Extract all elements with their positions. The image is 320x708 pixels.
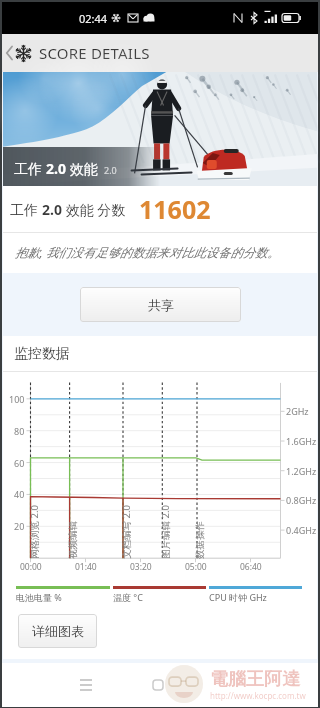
staticText: 電腦王阿達 — [210, 668, 300, 691]
staticText: 工作 — [14, 159, 46, 178]
staticText: 2GHz — [286, 405, 309, 417]
staticText: 工作 — [10, 200, 42, 219]
staticText: 1.2GHz — [286, 465, 317, 477]
staticText: 0.8GHz — [286, 494, 317, 506]
staticText: 05:00 — [185, 561, 207, 573]
staticText: 数据操作 — [194, 521, 206, 559]
staticText: 监控数据 — [14, 345, 70, 363]
staticText: 03:20 — [130, 561, 152, 573]
staticText: 60 — [14, 457, 25, 469]
staticText: 11602 — [139, 192, 211, 226]
staticText: 2.0 — [46, 159, 66, 178]
staticText: 2.0 — [42, 200, 62, 219]
staticText: 详细图表 — [32, 623, 84, 639]
staticText: 02:44 — [79, 11, 108, 26]
button[interactable]: Home — [136, 663, 180, 707]
staticText: http://www.kocpc.com.tw — [210, 690, 306, 701]
staticText: 01:40 — [75, 561, 97, 573]
staticText: 共享 — [148, 297, 174, 313]
staticText: 00:00 — [20, 561, 42, 573]
staticText: 效能 — [66, 159, 98, 178]
staticText: 图片编辑 2.0 — [159, 505, 171, 559]
button[interactable]: 详细图表 — [18, 614, 97, 648]
staticText: 网格浏览 2.0 — [28, 505, 40, 559]
button[interactable]: Back — [2, 34, 14, 72]
staticText: 1.6GHz — [286, 435, 317, 447]
staticText: 电池电量 % — [16, 591, 62, 603]
staticText: 80 — [14, 425, 25, 437]
staticText: 0.4GHz — [286, 524, 317, 536]
staticText: 06:40 — [240, 561, 262, 573]
staticText: 100 — [9, 393, 25, 405]
staticText: 视频编辑 — [67, 521, 79, 559]
button[interactable]: Recent apps — [64, 663, 108, 707]
button[interactable]: 共享 — [80, 287, 241, 322]
staticText: 抱歉, 我们没有足够的数据来对比此设备的分数。 — [15, 244, 280, 261]
staticText: 温度 °C — [113, 591, 143, 603]
staticText: SCORE DETAILS — [39, 43, 150, 63]
staticText: 效能 分数 — [62, 200, 126, 219]
staticText: 文档编写 2.0 — [120, 505, 132, 559]
staticText: CPU 时钟 GHz — [209, 591, 267, 603]
staticText: 2.0 — [104, 164, 117, 176]
staticText: 20 — [14, 520, 25, 532]
staticText: 40 — [14, 488, 25, 500]
